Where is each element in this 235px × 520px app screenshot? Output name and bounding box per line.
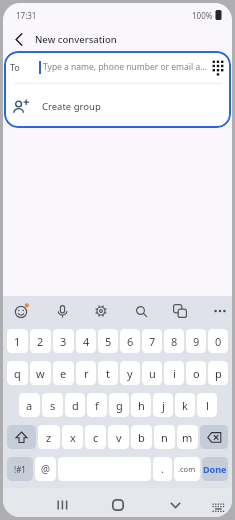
staticText: g [116, 398, 123, 413]
staticText: x [70, 430, 76, 445]
staticText: .com [178, 464, 196, 474]
button[interactable] [172, 303, 188, 319]
button[interactable]: 5 [98, 329, 118, 353]
button[interactable]: c [85, 425, 106, 449]
staticText: @ [41, 462, 50, 476]
button[interactable]: o [186, 361, 206, 385]
button[interactable] [3, 27, 35, 51]
staticText: o [193, 366, 200, 381]
staticText: i [173, 366, 176, 381]
staticText: 4 [83, 334, 90, 349]
staticText: b [138, 430, 145, 445]
button[interactable]: p [208, 361, 228, 385]
staticText: Type a name, phone number or email a... [43, 61, 212, 73]
staticText: f [95, 398, 99, 413]
staticText: m [182, 430, 193, 445]
staticText: y [127, 366, 133, 381]
staticText: a [26, 398, 33, 413]
staticText: u [149, 366, 156, 381]
staticText: !#1 [14, 464, 26, 475]
button[interactable]: !#1 [7, 457, 33, 481]
button[interactable] [211, 502, 225, 513]
button[interactable] [93, 303, 109, 319]
button[interactable]: 7 [142, 329, 162, 353]
button[interactable] [7, 425, 36, 449]
button[interactable]: f [87, 393, 107, 417]
button[interactable]: k [175, 393, 195, 417]
button[interactable]: b [131, 425, 152, 449]
button[interactable]: 2 [30, 329, 51, 353]
staticText: 0 [215, 334, 222, 349]
staticText: 3 [60, 334, 67, 349]
button[interactable]: @ [35, 457, 56, 481]
button[interactable]: 3 [53, 329, 74, 353]
button[interactable] [212, 60, 224, 75]
button[interactable]: i [164, 361, 184, 385]
button[interactable] [200, 425, 228, 449]
button[interactable]: z [38, 425, 60, 449]
button[interactable] [133, 303, 149, 319]
button[interactable] [54, 303, 70, 319]
staticText: d [72, 398, 79, 413]
staticText: 5 [105, 334, 112, 349]
button[interactable]: l [197, 393, 217, 417]
staticText: . [161, 462, 164, 476]
staticText: q [14, 366, 21, 381]
button[interactable]: Done [202, 457, 228, 481]
button[interactable]: y [120, 361, 140, 385]
button[interactable] [108, 495, 128, 515]
staticText: 6 [127, 334, 134, 349]
staticText: 7 [149, 334, 156, 349]
staticText: 2 [37, 334, 44, 349]
button[interactable]: r [76, 361, 96, 385]
button[interactable] [52, 495, 72, 515]
button[interactable] [14, 303, 30, 319]
staticText: To [10, 61, 20, 73]
button[interactable]: q [7, 361, 28, 385]
button[interactable]: m [177, 425, 198, 449]
staticText: v [116, 430, 122, 445]
staticText: p [215, 366, 222, 381]
button[interactable]: v [108, 425, 129, 449]
button[interactable]: g [109, 393, 129, 417]
button[interactable]: 4 [76, 329, 96, 353]
staticText: e [60, 366, 67, 381]
staticText: l [206, 398, 209, 413]
button[interactable]: t [98, 361, 118, 385]
button[interactable]: . [153, 457, 172, 481]
button[interactable]: s [42, 393, 63, 417]
staticText: r [84, 366, 89, 381]
button[interactable]: 0 [208, 329, 228, 353]
staticText: h [138, 398, 145, 413]
staticText: k [182, 398, 188, 413]
button[interactable]: 8 [164, 329, 184, 353]
button[interactable]: j [153, 393, 173, 417]
button[interactable]: h [131, 393, 151, 417]
button[interactable]: n [154, 425, 175, 449]
staticText: t [106, 366, 110, 381]
staticText: 8 [171, 334, 178, 349]
button[interactable]: a [19, 393, 40, 417]
button[interactable]: e [53, 361, 74, 385]
staticText: j [162, 398, 165, 413]
button[interactable]: x [62, 425, 83, 449]
staticText: z [46, 430, 52, 445]
button[interactable]: 1 [7, 329, 28, 353]
button[interactable]: u [142, 361, 162, 385]
button[interactable]: Create group [13, 84, 231, 128]
button[interactable]: 6 [120, 329, 140, 353]
staticText: c [93, 430, 99, 445]
staticText: w [36, 366, 45, 381]
button[interactable]: d [65, 393, 85, 417]
staticText: n [161, 430, 168, 445]
staticText: 9 [193, 334, 200, 349]
button[interactable]: .com [174, 457, 200, 481]
staticText: Create group [42, 100, 101, 113]
button[interactable]: 9 [186, 329, 206, 353]
button[interactable] [165, 495, 185, 515]
button[interactable]: To [10, 51, 224, 83]
button[interactable]: w [30, 361, 51, 385]
staticText: 1 [14, 334, 21, 349]
button[interactable] [212, 303, 228, 319]
